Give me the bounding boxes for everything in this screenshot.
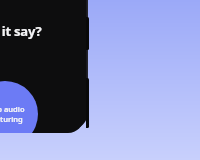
staticText: capturing [0, 114, 23, 124]
button[interactable]: Power button [86, 17, 89, 50]
button[interactable]: Stop audio [0, 81, 38, 133]
staticText: What did it say? [0, 22, 42, 40]
staticText: Stop audio [0, 104, 25, 114]
button[interactable]: Volume buttons [86, 78, 89, 128]
